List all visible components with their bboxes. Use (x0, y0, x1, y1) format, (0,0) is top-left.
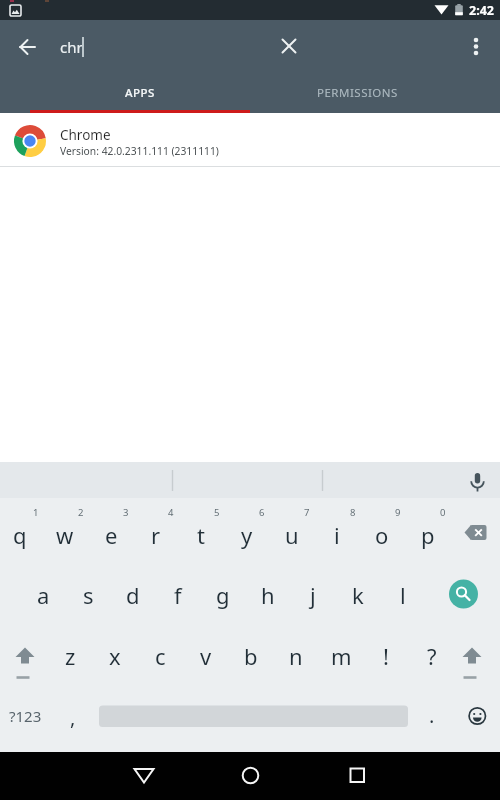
staticText: ? (427, 641, 437, 671)
button[interactable]: APPS (30, 73, 250, 113)
button[interactable]: z (47, 634, 93, 678)
staticText: ?123 (9, 706, 42, 726)
button[interactable]: h (245, 573, 291, 617)
button[interactable] (460, 462, 500, 498)
staticText: 2 (78, 506, 84, 519)
button[interactable] (452, 513, 496, 557)
staticText: 3 (123, 506, 129, 519)
button[interactable]: Chrome (0, 113, 500, 167)
staticText: u (285, 520, 299, 550)
button[interactable]: n (273, 634, 319, 678)
staticText: 6 (259, 506, 265, 519)
staticText: j (310, 580, 316, 610)
button[interactable]: q (0, 513, 43, 557)
staticText: a (37, 580, 50, 610)
button[interactable]: r (133, 513, 179, 557)
staticText: p (421, 520, 435, 550)
staticText: Version: 42.0.2311.111 (2311111) (60, 144, 219, 158)
button[interactable] (458, 28, 496, 66)
button[interactable]: x (92, 634, 138, 678)
button[interactable] (120, 752, 168, 800)
button[interactable]: v (183, 634, 229, 678)
staticText: b (244, 641, 258, 671)
staticText: e (105, 520, 118, 550)
button[interactable]: m (318, 634, 364, 678)
staticText: 5 (214, 506, 220, 519)
staticText: PERMISSIONS (317, 85, 398, 101)
staticText: 7 (304, 506, 310, 519)
staticText: chr (60, 37, 83, 57)
staticText: r (151, 520, 161, 550)
staticText: t (197, 520, 205, 550)
staticText: 9 (395, 506, 401, 519)
staticText: z (65, 641, 76, 671)
button[interactable]: p (405, 513, 451, 557)
button[interactable]: , (50, 695, 96, 739)
staticText: n (289, 641, 303, 671)
staticText: x (109, 641, 121, 671)
button[interactable]: b (228, 634, 274, 678)
button[interactable] (226, 752, 274, 800)
button[interactable]: ! (363, 634, 409, 678)
staticText: 1 (33, 506, 39, 519)
staticText: d (126, 580, 140, 610)
staticText: c (155, 641, 166, 671)
staticText: 0 (440, 506, 446, 519)
button[interactable] (8, 28, 46, 66)
staticText: l (400, 580, 406, 610)
button[interactable] (441, 572, 485, 616)
button[interactable]: c (137, 634, 183, 678)
button[interactable]: w (42, 513, 88, 557)
staticText: m (331, 641, 352, 671)
button[interactable]: y (224, 513, 270, 557)
staticText: , (70, 704, 76, 731)
button[interactable]: i (314, 513, 360, 557)
button[interactable]: PERMISSIONS (250, 73, 465, 113)
button[interactable]: o (359, 513, 405, 557)
staticText: k (352, 580, 364, 610)
staticText: . (429, 702, 435, 729)
button[interactable]: u (269, 513, 315, 557)
button[interactable]: d (110, 573, 156, 617)
staticText: y (241, 520, 253, 550)
button[interactable]: j (290, 573, 336, 617)
button[interactable]: l (380, 573, 426, 617)
button[interactable]: ?123 (2, 694, 48, 738)
button[interactable]: e (88, 513, 134, 557)
button[interactable] (450, 634, 494, 678)
staticText: w (56, 520, 74, 550)
button[interactable]: a (20, 573, 66, 617)
staticText: APPS (125, 85, 155, 101)
staticText: 4 (168, 506, 174, 519)
staticText: h (261, 580, 275, 610)
staticText: q (13, 520, 27, 550)
button[interactable] (333, 752, 381, 800)
staticText: 2:42 (469, 2, 494, 19)
button[interactable]: t (178, 513, 224, 557)
staticText: i (334, 520, 340, 550)
button[interactable]: k (335, 573, 381, 617)
button[interactable]: . (409, 693, 455, 737)
staticText: v (200, 641, 212, 671)
button[interactable] (3, 634, 47, 678)
button[interactable] (270, 28, 308, 66)
staticText: o (375, 520, 389, 550)
staticText: g (216, 580, 230, 610)
button[interactable] (460, 698, 496, 734)
staticText: f (174, 580, 182, 610)
button[interactable]: f (155, 573, 201, 617)
button[interactable]: s (65, 573, 111, 617)
staticText: ! (383, 641, 389, 671)
button[interactable]: ? (409, 634, 455, 678)
staticText: 8 (350, 506, 356, 519)
staticText: Chrome (60, 126, 111, 142)
staticText: s (83, 580, 94, 610)
button[interactable]: g (200, 573, 246, 617)
